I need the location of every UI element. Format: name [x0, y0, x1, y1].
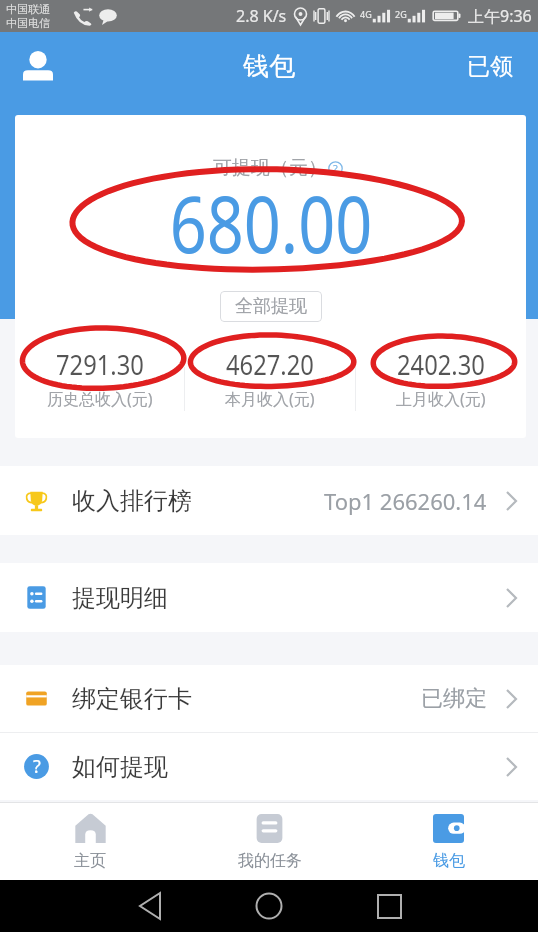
- button[interactable]: 全部提现: [220, 291, 322, 322]
- staticText: 7291.30: [56, 346, 144, 383]
- staticText: ?: [333, 161, 338, 176]
- staticText: 提现明细: [72, 583, 168, 613]
- button[interactable]: 钱包: [359, 803, 538, 880]
- staticText: 历史总收入(元): [47, 388, 153, 410]
- staticText: 4G: [360, 8, 372, 20]
- staticText: 4627.20: [226, 346, 314, 383]
- button[interactable]: 提现明细: [0, 563, 538, 632]
- button[interactable]: 绑定银行卡: [0, 665, 538, 732]
- staticText: 上午9:36: [468, 5, 532, 27]
- staticText: ?: [33, 754, 41, 779]
- button[interactable]: 收入排行榜: [0, 466, 538, 535]
- staticText: 2402.30: [397, 346, 485, 383]
- staticText: 已绑定: [421, 685, 487, 713]
- staticText: 全部提现: [235, 295, 307, 318]
- staticText: 2G: [395, 8, 407, 20]
- button[interactable]: 已领: [461, 44, 519, 89]
- button[interactable]: 主页: [0, 803, 180, 880]
- staticText: 2.8 K/s: [236, 5, 287, 27]
- staticText: 680.00: [169, 169, 373, 277]
- button[interactable]: 我的任务: [180, 803, 359, 880]
- staticText: 收入排行榜: [72, 486, 192, 516]
- staticText: 绑定银行卡: [72, 684, 192, 714]
- staticText: 可提现（元）: [213, 156, 327, 180]
- staticText: 中国联通: [6, 2, 50, 16]
- staticText: 钱包: [243, 50, 295, 83]
- button[interactable]: ?: [0, 733, 538, 800]
- staticText: 本月收入(元): [225, 388, 315, 410]
- staticText: 如何提现: [72, 752, 168, 782]
- button[interactable]: Profile: [13, 41, 63, 91]
- staticText: 钱包: [433, 851, 465, 871]
- staticText: 中国电信: [6, 16, 50, 30]
- staticText: 上月收入(元): [396, 388, 486, 410]
- staticText: 已领: [467, 52, 513, 81]
- staticText: 主页: [74, 851, 106, 871]
- staticText: Top1 266260.14: [324, 486, 487, 516]
- staticText: 我的任务: [238, 851, 302, 871]
